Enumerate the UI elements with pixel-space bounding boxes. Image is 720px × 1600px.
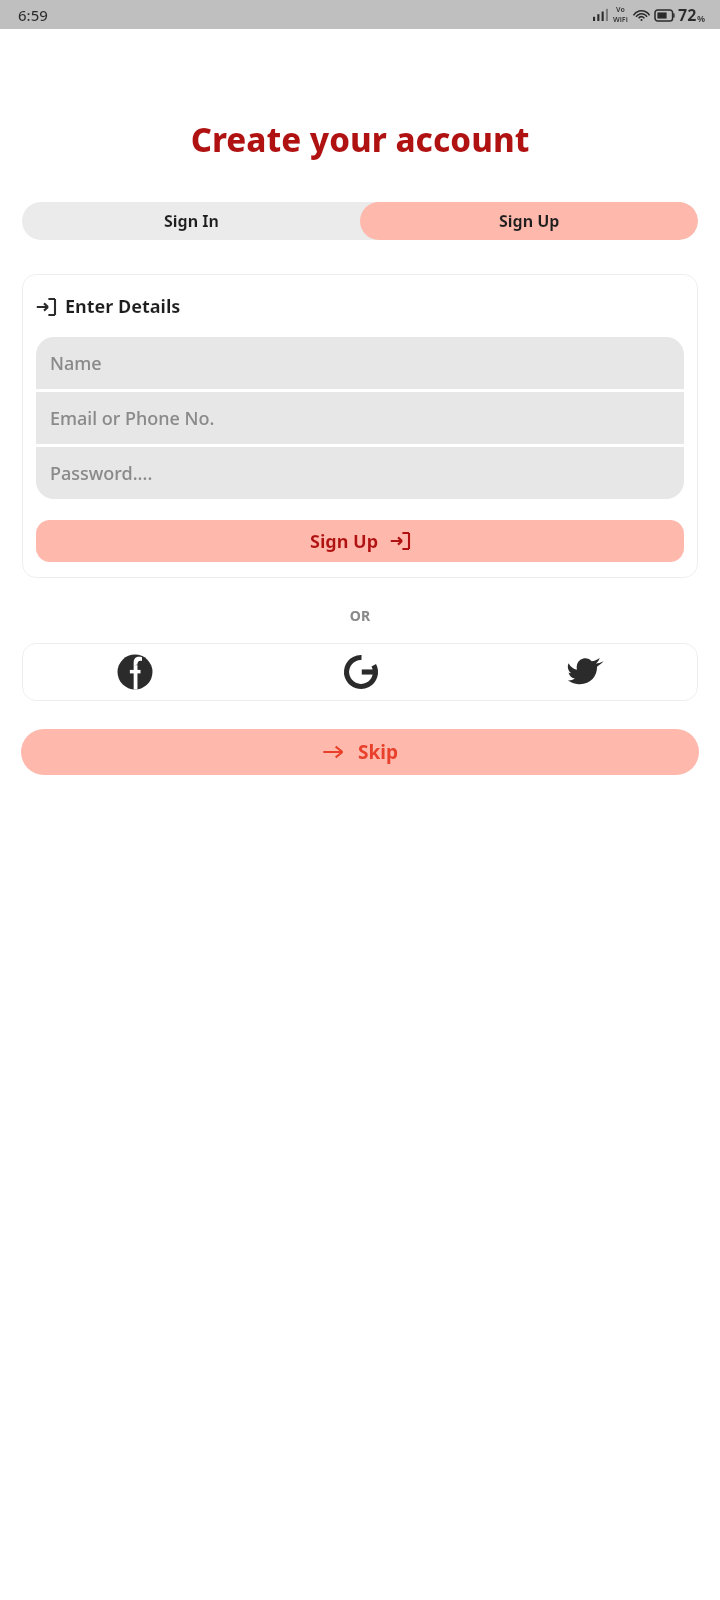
- staticText: Create your account: [0, 117, 720, 162]
- button[interactable]: Sign Up: [360, 202, 698, 240]
- staticText: %: [697, 12, 706, 24]
- staticText: Password....: [50, 461, 153, 486]
- button[interactable]: Sign up with Google: [248, 643, 473, 701]
- staticText: Skip: [358, 739, 398, 765]
- staticText: Vo: [616, 5, 625, 15]
- button[interactable]: Sign up with Twitter: [473, 643, 698, 701]
- staticText: OR: [0, 606, 720, 625]
- staticText: Name: [50, 351, 102, 376]
- staticText: 6:59: [18, 5, 48, 25]
- staticText: Sign Up: [499, 210, 560, 232]
- button[interactable]: Password....: [36, 447, 684, 499]
- button[interactable]: Sign In: [22, 202, 360, 240]
- staticText: Email or Phone No.: [50, 406, 215, 431]
- staticText: WiFi: [613, 15, 628, 25]
- button[interactable]: Sign up with Facebook: [22, 643, 248, 701]
- staticText: Sign In: [164, 210, 219, 232]
- button[interactable]: Name: [36, 337, 684, 389]
- staticText: Enter Details: [65, 294, 181, 319]
- button[interactable]: Skip: [21, 729, 699, 775]
- other: Enter details: [36, 297, 56, 317]
- button[interactable]: Email or Phone No.: [36, 392, 684, 444]
- staticText: Sign Up: [310, 529, 379, 554]
- button[interactable]: Sign Up: [36, 520, 684, 562]
- staticText: 72: [678, 4, 697, 26]
